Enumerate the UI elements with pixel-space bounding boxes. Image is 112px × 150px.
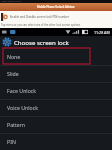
button[interactable]: None bbox=[0, 48, 112, 65]
button[interactable]: Face Unlock bbox=[0, 82, 112, 99]
staticText: Voice Unlock bbox=[7, 104, 38, 111]
button[interactable]: Pattern bbox=[0, 116, 112, 133]
other: Settings bbox=[2, 37, 12, 47]
button[interactable]: Slide bbox=[0, 65, 112, 82]
button[interactable]: Voice Unlock bbox=[0, 99, 112, 116]
staticText: None bbox=[7, 53, 21, 60]
staticText: Tap menu or you can select one of the ot… bbox=[1, 23, 81, 27]
staticText: PIN bbox=[7, 138, 16, 145]
staticText: Slide bbox=[7, 70, 19, 77]
staticText: Mobile Phone Unlock Advisor bbox=[37, 5, 75, 9]
staticText: Mobile Phone Unlock bbox=[1, 0, 21, 3]
staticText: Face Unlock bbox=[7, 87, 37, 94]
staticText: Choose screen lock bbox=[14, 38, 69, 46]
staticText: 11:28 AM bbox=[94, 30, 110, 35]
staticText: Pattern bbox=[7, 121, 26, 128]
staticText: Enable and Disable screen lock PIN numbe… bbox=[10, 15, 70, 19]
button[interactable]: PIN bbox=[0, 133, 112, 150]
